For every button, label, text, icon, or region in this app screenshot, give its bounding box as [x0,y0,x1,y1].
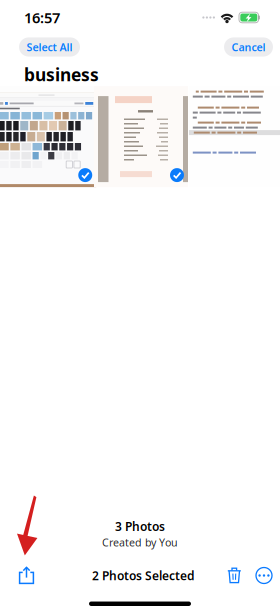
staticText: Cancel [231,40,265,54]
button[interactable]: Delete [221,564,248,587]
staticText: 16:57 [24,8,60,27]
staticText: Select All [26,40,72,54]
staticText: Created by You [102,535,178,549]
staticText: business [24,63,99,86]
button[interactable]: More [250,564,278,587]
button[interactable]: Select All [19,37,80,57]
staticText: 3 Photos [115,518,165,534]
button[interactable]: Share [12,564,40,587]
staticText: 2 Photos Selected [92,567,195,583]
button[interactable]: Cancel [224,37,273,57]
